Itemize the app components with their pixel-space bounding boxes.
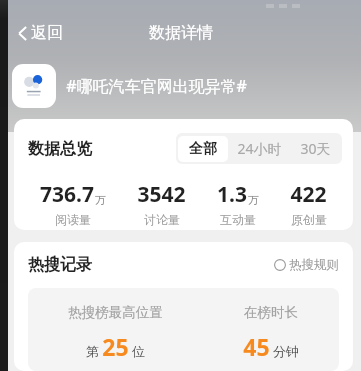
- staticText: 1.3: [217, 180, 247, 209]
- button[interactable]: 热搜榜最高位置: [62, 304, 169, 362]
- staticText: 数据总览: [28, 139, 92, 159]
- staticText: 30天: [300, 139, 331, 158]
- button[interactable]: 返回: [12, 20, 67, 46]
- button[interactable]: 3542: [133, 180, 190, 227]
- staticText: 25: [102, 331, 129, 362]
- staticText: 互动量: [220, 212, 256, 227]
- staticText: 24小时: [237, 139, 282, 158]
- staticText: 万: [95, 193, 106, 207]
- staticText: 45: [243, 331, 270, 362]
- staticText: 位: [132, 343, 145, 359]
- staticText: 分钟: [273, 343, 299, 359]
- staticText: 返回: [31, 23, 63, 43]
- button[interactable]: 736.7: [36, 180, 110, 227]
- staticText: 热搜榜最高位置: [68, 304, 163, 321]
- button[interactable]: 热搜规则说明: [272, 255, 341, 275]
- staticText: 万: [248, 193, 259, 207]
- button[interactable]: 全部: [178, 136, 228, 162]
- button[interactable]: #哪吒汽车官网出现异常#: [0, 64, 361, 108]
- staticText: 422: [290, 180, 327, 209]
- staticText: 在榜时长: [244, 304, 298, 321]
- button[interactable]: 24小时: [228, 135, 291, 162]
- button[interactable]: 422: [286, 180, 331, 227]
- staticText: 第: [86, 343, 99, 359]
- staticText: 原创量: [291, 212, 327, 227]
- button[interactable]: 30天: [291, 135, 340, 162]
- button[interactable]: 1.3: [213, 180, 263, 227]
- other: 热搜规则说明: [274, 259, 286, 271]
- staticText: 全部: [189, 140, 217, 158]
- staticText: 阅读量: [55, 212, 91, 227]
- staticText: 热搜记录: [28, 255, 92, 275]
- staticText: 讨论量: [144, 212, 180, 227]
- staticText: #哪吒汽车官网出现异常#: [66, 75, 247, 97]
- staticText: 736.7: [40, 180, 94, 209]
- staticText: 热搜规则: [289, 257, 339, 273]
- staticText: 3542: [137, 180, 186, 209]
- staticText: 数据详情: [149, 23, 213, 43]
- button[interactable]: 在榜时长: [237, 304, 305, 362]
